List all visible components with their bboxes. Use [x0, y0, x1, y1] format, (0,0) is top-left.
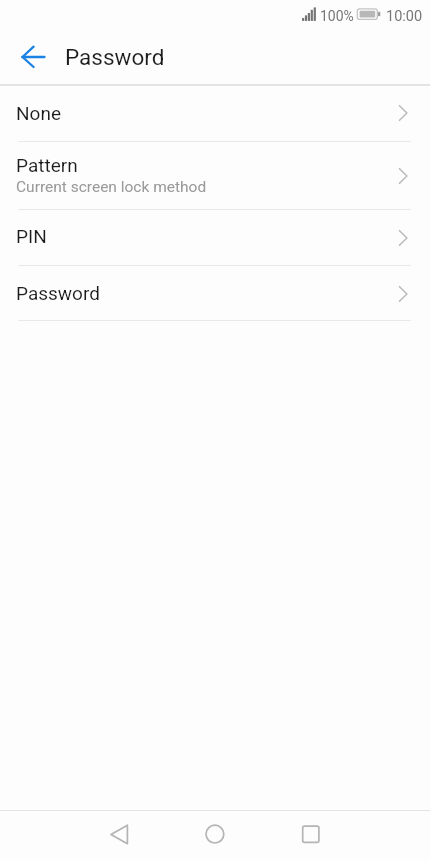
staticText: Password [16, 282, 100, 304]
staticText: Pattern [16, 154, 78, 176]
staticText: PIN [16, 225, 47, 247]
button[interactable]: None [0, 84, 430, 141]
staticText: 10:00 [386, 8, 423, 25]
staticText: Current screen lock method [16, 178, 207, 196]
button[interactable]: Password [0, 266, 430, 321]
button[interactable]: Back [5, 33, 39, 81]
staticText: 100% [320, 8, 354, 24]
button[interactable]: Recent apps [286, 810, 335, 860]
staticText: None [16, 102, 61, 124]
button[interactable]: Back [96, 810, 145, 860]
staticText: Password [65, 44, 165, 70]
button[interactable]: PIN [0, 210, 430, 266]
button[interactable]: Pattern [0, 141, 430, 210]
button[interactable]: Home [190, 810, 239, 860]
